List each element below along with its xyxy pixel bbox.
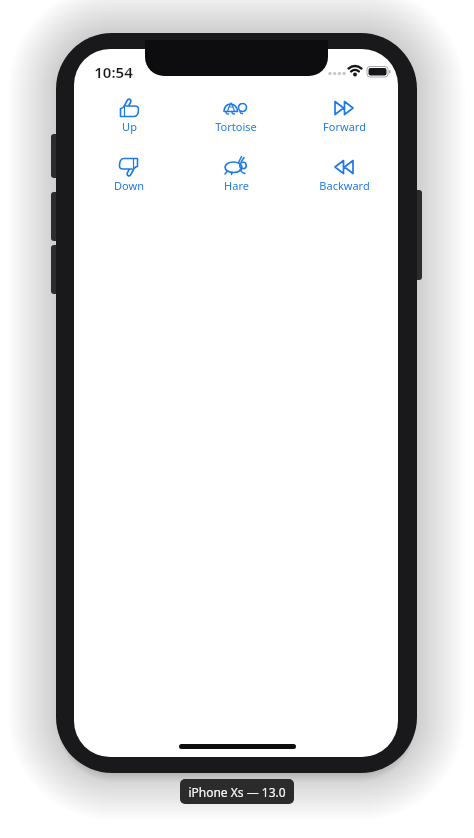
staticText: iPhone Xs — 13.0	[188, 784, 286, 800]
staticText: Backward	[319, 178, 370, 193]
staticText: 10:54	[94, 62, 133, 80]
staticText: Hare	[224, 178, 249, 193]
button[interactable]: Down	[84, 156, 174, 200]
staticText: Down	[114, 178, 144, 193]
button[interactable]: Tortoise	[191, 97, 281, 141]
button[interactable]: Hare	[191, 156, 281, 200]
button[interactable]: Forward	[299, 97, 389, 141]
button[interactable]: Backward	[299, 156, 389, 200]
staticText: Tortoise	[215, 119, 257, 134]
button[interactable]: Up	[84, 97, 174, 141]
staticText: Forward	[323, 119, 366, 134]
staticText: Up	[122, 119, 137, 134]
